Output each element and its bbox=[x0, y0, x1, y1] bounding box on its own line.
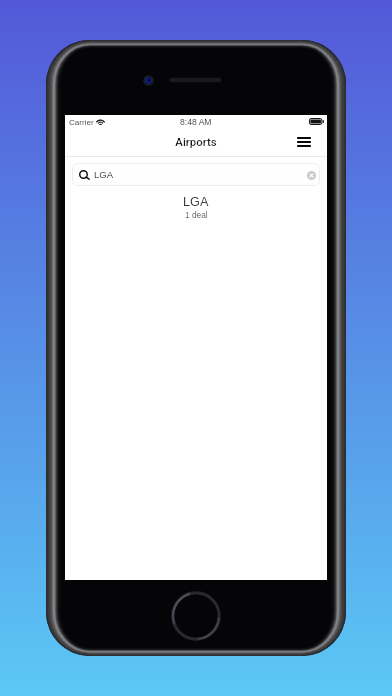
staticText: 8:48 AM bbox=[180, 117, 212, 127]
button[interactable]: Clear search bbox=[304, 168, 318, 182]
staticText: Carrier bbox=[69, 118, 94, 127]
staticText: LGA bbox=[94, 169, 114, 180]
button[interactable]: LGA bbox=[65, 195, 327, 219]
staticText: Airports bbox=[175, 135, 217, 148]
staticText: LGA bbox=[183, 195, 209, 209]
staticText: 1 deal bbox=[185, 210, 208, 219]
button[interactable]: LGA bbox=[72, 163, 320, 186]
button[interactable]: Menu bbox=[291, 131, 317, 152]
